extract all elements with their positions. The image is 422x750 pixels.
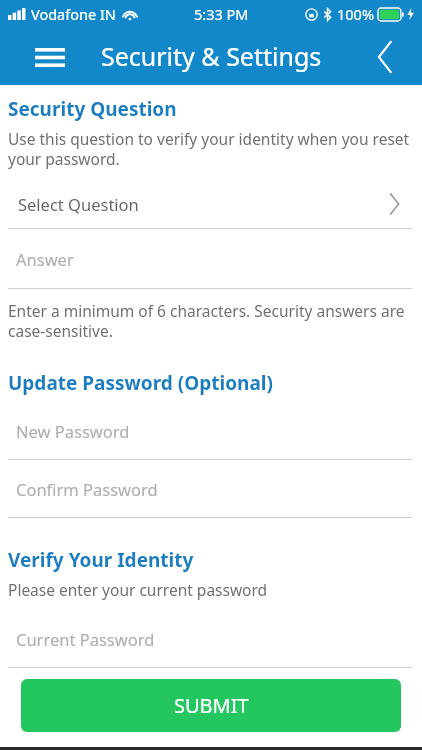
button[interactable]: Current Password (16, 610, 422, 667)
button[interactable]: Confirm Password (16, 460, 422, 517)
staticText: Use this question to verify your identit… (8, 128, 410, 169)
button[interactable]: SUBMIT (21, 679, 401, 732)
staticText: Vodafone IN (31, 4, 116, 24)
staticText: Select Question (18, 193, 139, 215)
staticText: 100% (337, 4, 374, 24)
staticText: Verify Your Identity (8, 547, 194, 573)
staticText: SUBMIT (174, 692, 249, 719)
staticText: Enter a minimum of 6 characters. Securit… (8, 300, 405, 341)
staticText: Security Question (8, 96, 177, 122)
button[interactable]: Menu (28, 35, 72, 79)
staticText: New Password (16, 420, 130, 442)
staticText: Update Password (Optional) (8, 370, 273, 396)
staticText: Confirm Password (16, 478, 158, 500)
staticText: Please enter your current password (8, 579, 268, 600)
button[interactable]: New Password (16, 402, 422, 459)
button[interactable]: Answer (16, 229, 422, 288)
staticText: Security & Settings (101, 39, 322, 73)
staticText: 5:33 PM (194, 4, 249, 24)
button[interactable]: Select Question (18, 182, 400, 226)
staticText: Current Password (16, 628, 155, 650)
staticText: Answer (16, 248, 74, 270)
button[interactable]: Back (362, 34, 408, 80)
